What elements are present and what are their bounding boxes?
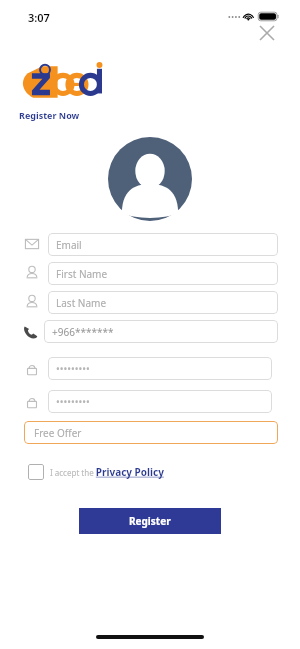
- button[interactable]: Close: [254, 20, 280, 46]
- button[interactable]: Free Offer: [24, 421, 278, 444]
- staticText: Email: [56, 238, 82, 252]
- staticText: Free Offer: [34, 426, 82, 440]
- button[interactable]: +966*******: [44, 320, 278, 343]
- staticText: •••••••••: [56, 395, 90, 409]
- staticText: Register: [129, 514, 171, 528]
- button[interactable]: •••••••••: [48, 390, 272, 413]
- button[interactable]: Last Name: [48, 291, 278, 314]
- button[interactable]: Register: [79, 508, 221, 534]
- staticText: First Name: [56, 267, 108, 281]
- staticText: I accept the Privacy Policy: [50, 465, 164, 479]
- button[interactable]: Email: [48, 233, 278, 256]
- button[interactable]: Profile photo: [108, 137, 192, 221]
- button[interactable]: First Name: [48, 262, 278, 285]
- staticText: Register Now: [19, 109, 80, 121]
- button[interactable]: I accept the Privacy Policy: [28, 461, 164, 483]
- staticText: +966*******: [52, 325, 114, 339]
- staticText: 3:07: [28, 10, 50, 25]
- staticText: Last Name: [56, 296, 107, 310]
- staticText: •••••••••: [56, 362, 90, 376]
- button[interactable]: •••••••••: [48, 357, 272, 380]
